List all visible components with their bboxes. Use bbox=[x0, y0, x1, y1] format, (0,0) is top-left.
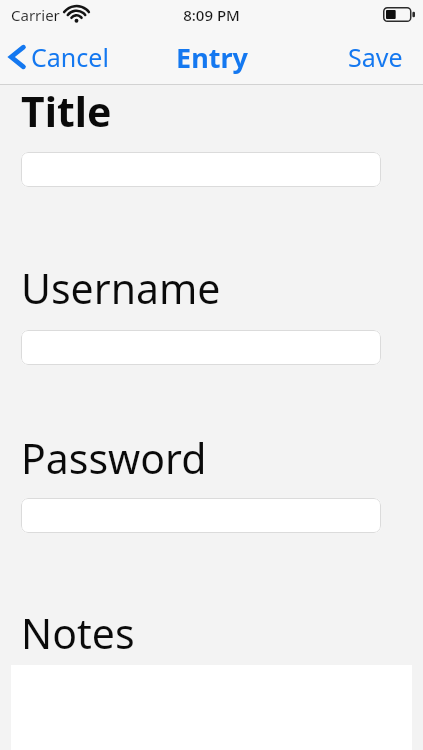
other: Wi-Fi signal bbox=[65, 7, 88, 23]
staticText: Cancel bbox=[31, 40, 109, 74]
staticText: Save bbox=[348, 40, 403, 74]
staticText: Entry bbox=[176, 39, 248, 76]
staticText: Password bbox=[21, 430, 207, 486]
button[interactable] bbox=[21, 152, 381, 187]
staticText: 8:09 PM bbox=[183, 5, 240, 25]
button[interactable]: Save bbox=[328, 29, 423, 85]
staticText: Title bbox=[21, 83, 112, 139]
button[interactable] bbox=[21, 498, 381, 533]
button[interactable]: Cancel bbox=[0, 29, 121, 85]
staticText: Notes bbox=[21, 605, 135, 661]
other: Battery level bbox=[383, 7, 415, 22]
staticText: Carrier bbox=[11, 5, 60, 25]
staticText: Username bbox=[21, 260, 221, 316]
button[interactable] bbox=[21, 330, 381, 365]
